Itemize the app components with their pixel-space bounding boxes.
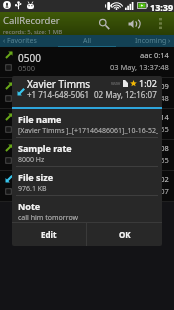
staticText: 0500	[18, 94, 36, 104]
staticText: [Xavier Timms ]_[+17146486061]_10-16-52_	[18, 126, 158, 136]
staticText: 0500	[18, 82, 41, 96]
staticText: 0500	[18, 187, 36, 197]
button[interactable]: OK	[87, 223, 162, 246]
button[interactable]: ‹ Favorites	[0, 35, 58, 46]
button[interactable]: Speaker	[124, 12, 141, 35]
staticText: 8000 Hz	[18, 155, 45, 165]
button[interactable]: More options	[153, 12, 168, 35]
staticText: aac 0:09	[140, 81, 169, 91]
staticText: 0500	[18, 144, 41, 158]
staticText: 0500	[18, 63, 36, 73]
staticText: OK	[119, 229, 131, 240]
staticText: 03 May, 13:37:48	[110, 62, 169, 72]
staticText: Xavier Timms	[27, 77, 91, 91]
staticText: ‹ Favorites	[3, 36, 37, 46]
staticText: Sample rate	[18, 142, 72, 154]
staticText: aac 0:08	[140, 143, 169, 153]
button[interactable]: 0500	[0, 78, 174, 109]
staticText: Note	[18, 200, 41, 212]
staticText: 02 May, 12:16:07	[94, 89, 157, 100]
staticText: wav	[111, 80, 121, 87]
staticText: 03 May, 13:33:55	[110, 155, 169, 165]
staticText: 976.1 KB	[18, 184, 47, 194]
staticText: aac 0:14	[140, 50, 169, 60]
button[interactable]: All	[58, 35, 116, 46]
button[interactable]: 0500	[0, 109, 174, 140]
staticText: call him tomorrow	[18, 213, 78, 222]
staticText: 0500	[18, 156, 36, 166]
staticText: File name	[18, 113, 62, 125]
staticText: File size	[18, 171, 54, 183]
staticText: All	[83, 36, 92, 46]
staticText: 0500	[18, 125, 36, 135]
staticText: 03 May, 13:28:07	[110, 186, 169, 196]
staticText: Edit	[41, 229, 57, 240]
button[interactable]: Search	[95, 12, 113, 35]
staticText: Incoming ›	[135, 36, 171, 46]
staticText: 03 May, 13:36:48	[110, 93, 169, 103]
button[interactable]: 0500	[0, 171, 174, 202]
staticText: 0500	[18, 113, 41, 127]
staticText: records: 5, size: 1 MB	[3, 28, 63, 36]
staticText: CallRecorder	[3, 14, 60, 27]
staticText: 03 May, 13:34:55	[110, 124, 169, 134]
button[interactable]: 0500	[0, 140, 174, 171]
button[interactable]: Incoming ›	[116, 35, 174, 46]
staticText: 0500	[18, 51, 41, 65]
staticText: 1:02	[139, 77, 157, 89]
staticText: aac 0:14	[140, 112, 169, 122]
staticText: +1 714-648-5061	[27, 89, 90, 100]
staticText: 13:39	[150, 1, 174, 13]
staticText: 0500	[18, 175, 41, 189]
staticText: aac 0:02	[140, 174, 169, 184]
button[interactable]: 0500	[0, 47, 174, 78]
button[interactable]: Edit	[12, 223, 86, 246]
